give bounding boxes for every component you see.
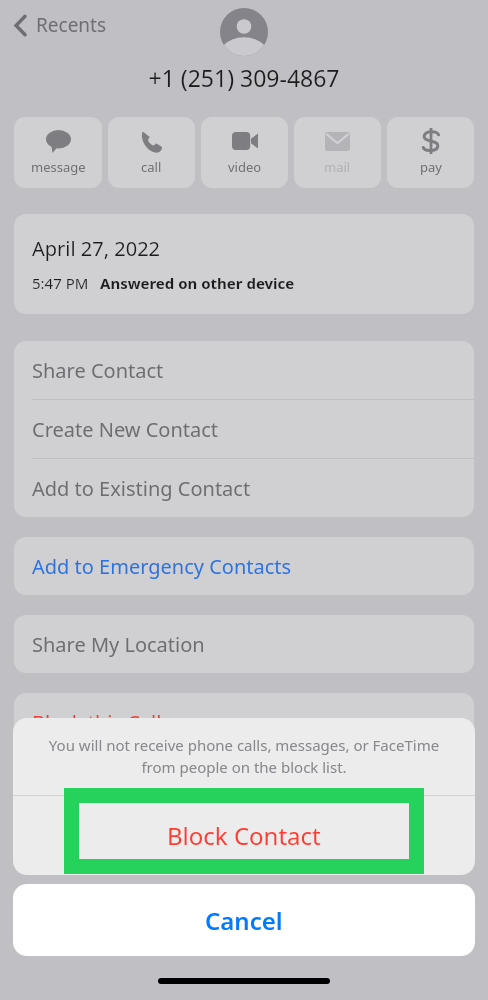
button[interactable]: Share My Location <box>14 615 474 673</box>
staticText: video <box>228 158 262 176</box>
button[interactable]: message <box>14 117 102 188</box>
staticText: Answered on other device <box>100 273 295 293</box>
other: Highlight <box>64 788 424 874</box>
staticText: Add to Emergency Contacts <box>32 553 292 580</box>
staticText: You will not receive phone calls, messag… <box>35 735 453 778</box>
staticText: Share My Location <box>32 631 205 658</box>
button[interactable]: Block this Caller <box>14 693 474 751</box>
other: Contact photo <box>220 8 268 56</box>
button[interactable]: call <box>108 117 195 188</box>
staticText: Cancel <box>205 904 283 937</box>
staticText: Create New Contact <box>32 416 219 443</box>
button[interactable]: Add to Emergency Contacts <box>14 537 474 595</box>
button[interactable]: Add to Existing Contact <box>14 459 474 517</box>
staticText: call <box>141 158 162 176</box>
staticText: Recents <box>36 12 107 38</box>
staticText: 5:47 PM <box>32 273 89 293</box>
staticText: Add to Existing Contact <box>32 475 251 502</box>
staticText: message <box>31 158 86 176</box>
staticText: Block this Caller <box>32 709 181 736</box>
button[interactable]: mail <box>294 117 381 188</box>
button[interactable]: Share Contact <box>14 341 474 399</box>
staticText: Share Contact <box>32 357 164 384</box>
button[interactable]: Cancel <box>13 884 475 956</box>
button[interactable]: Create New Contact <box>14 400 474 458</box>
button[interactable]: Block Contact <box>13 796 475 875</box>
staticText: mail <box>324 158 351 176</box>
button[interactable]: Recents <box>10 9 111 41</box>
staticText: April 27, 2022 <box>32 235 161 262</box>
button[interactable]: pay <box>387 117 474 188</box>
staticText: +1 (251) 309-4867 <box>148 62 340 93</box>
button[interactable]: April 27, 2022 <box>14 214 474 314</box>
button[interactable]: video <box>201 117 288 188</box>
staticText: pay <box>420 158 442 176</box>
staticText: Block Contact <box>167 819 321 852</box>
